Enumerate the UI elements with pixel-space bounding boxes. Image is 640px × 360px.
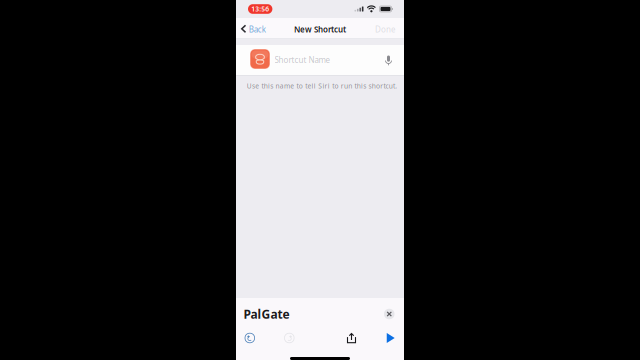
button[interactable]: Shortcut Name (236, 45, 404, 75)
button[interactable]: Redo (279, 329, 300, 347)
staticText: Back (249, 24, 266, 35)
button[interactable]: Share (341, 329, 362, 347)
staticText: Use this name to tell Siri to run this s… (247, 81, 397, 90)
staticText: Done (375, 24, 396, 35)
button[interactable]: Done (365, 18, 404, 38)
button[interactable]: Back (236, 18, 274, 38)
button[interactable]: Run (380, 329, 401, 347)
staticText: 13:56 (251, 5, 269, 13)
staticText: Shortcut Name (274, 55, 330, 65)
staticText: New Shortcut (294, 24, 346, 35)
staticText: PalGate (243, 306, 289, 322)
button[interactable]: Close (380, 305, 398, 323)
button[interactable]: Undo (239, 329, 260, 347)
